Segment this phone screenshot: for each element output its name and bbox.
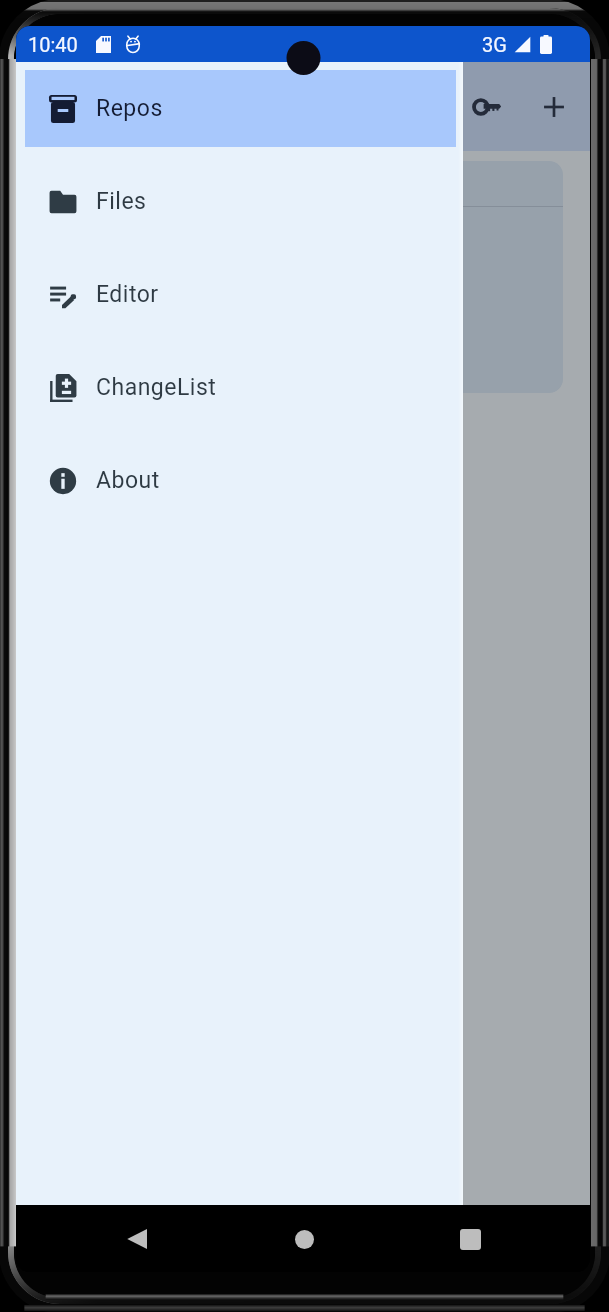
button[interactable]: About	[16, 434, 463, 527]
button[interactable]: Home	[272, 1207, 336, 1271]
staticText: Repos	[96, 95, 163, 122]
staticText: 3G	[482, 33, 507, 56]
button[interactable]: Key	[464, 83, 512, 131]
button[interactable]: ChangeList	[16, 341, 463, 434]
staticText: 10:40	[28, 33, 78, 56]
staticText: Files	[96, 188, 147, 215]
button[interactable]	[30, 161, 563, 393]
staticText: ChangeList	[96, 374, 217, 401]
button[interactable]: Repos	[16, 62, 463, 155]
button[interactable]: Add	[530, 83, 578, 131]
button[interactable]: Back	[104, 1207, 168, 1271]
button[interactable]: Editor	[16, 248, 463, 341]
button[interactable]: Files	[16, 155, 463, 248]
staticText: Editor	[96, 281, 159, 308]
staticText: About	[96, 467, 160, 494]
button[interactable]: Recents	[438, 1207, 502, 1271]
